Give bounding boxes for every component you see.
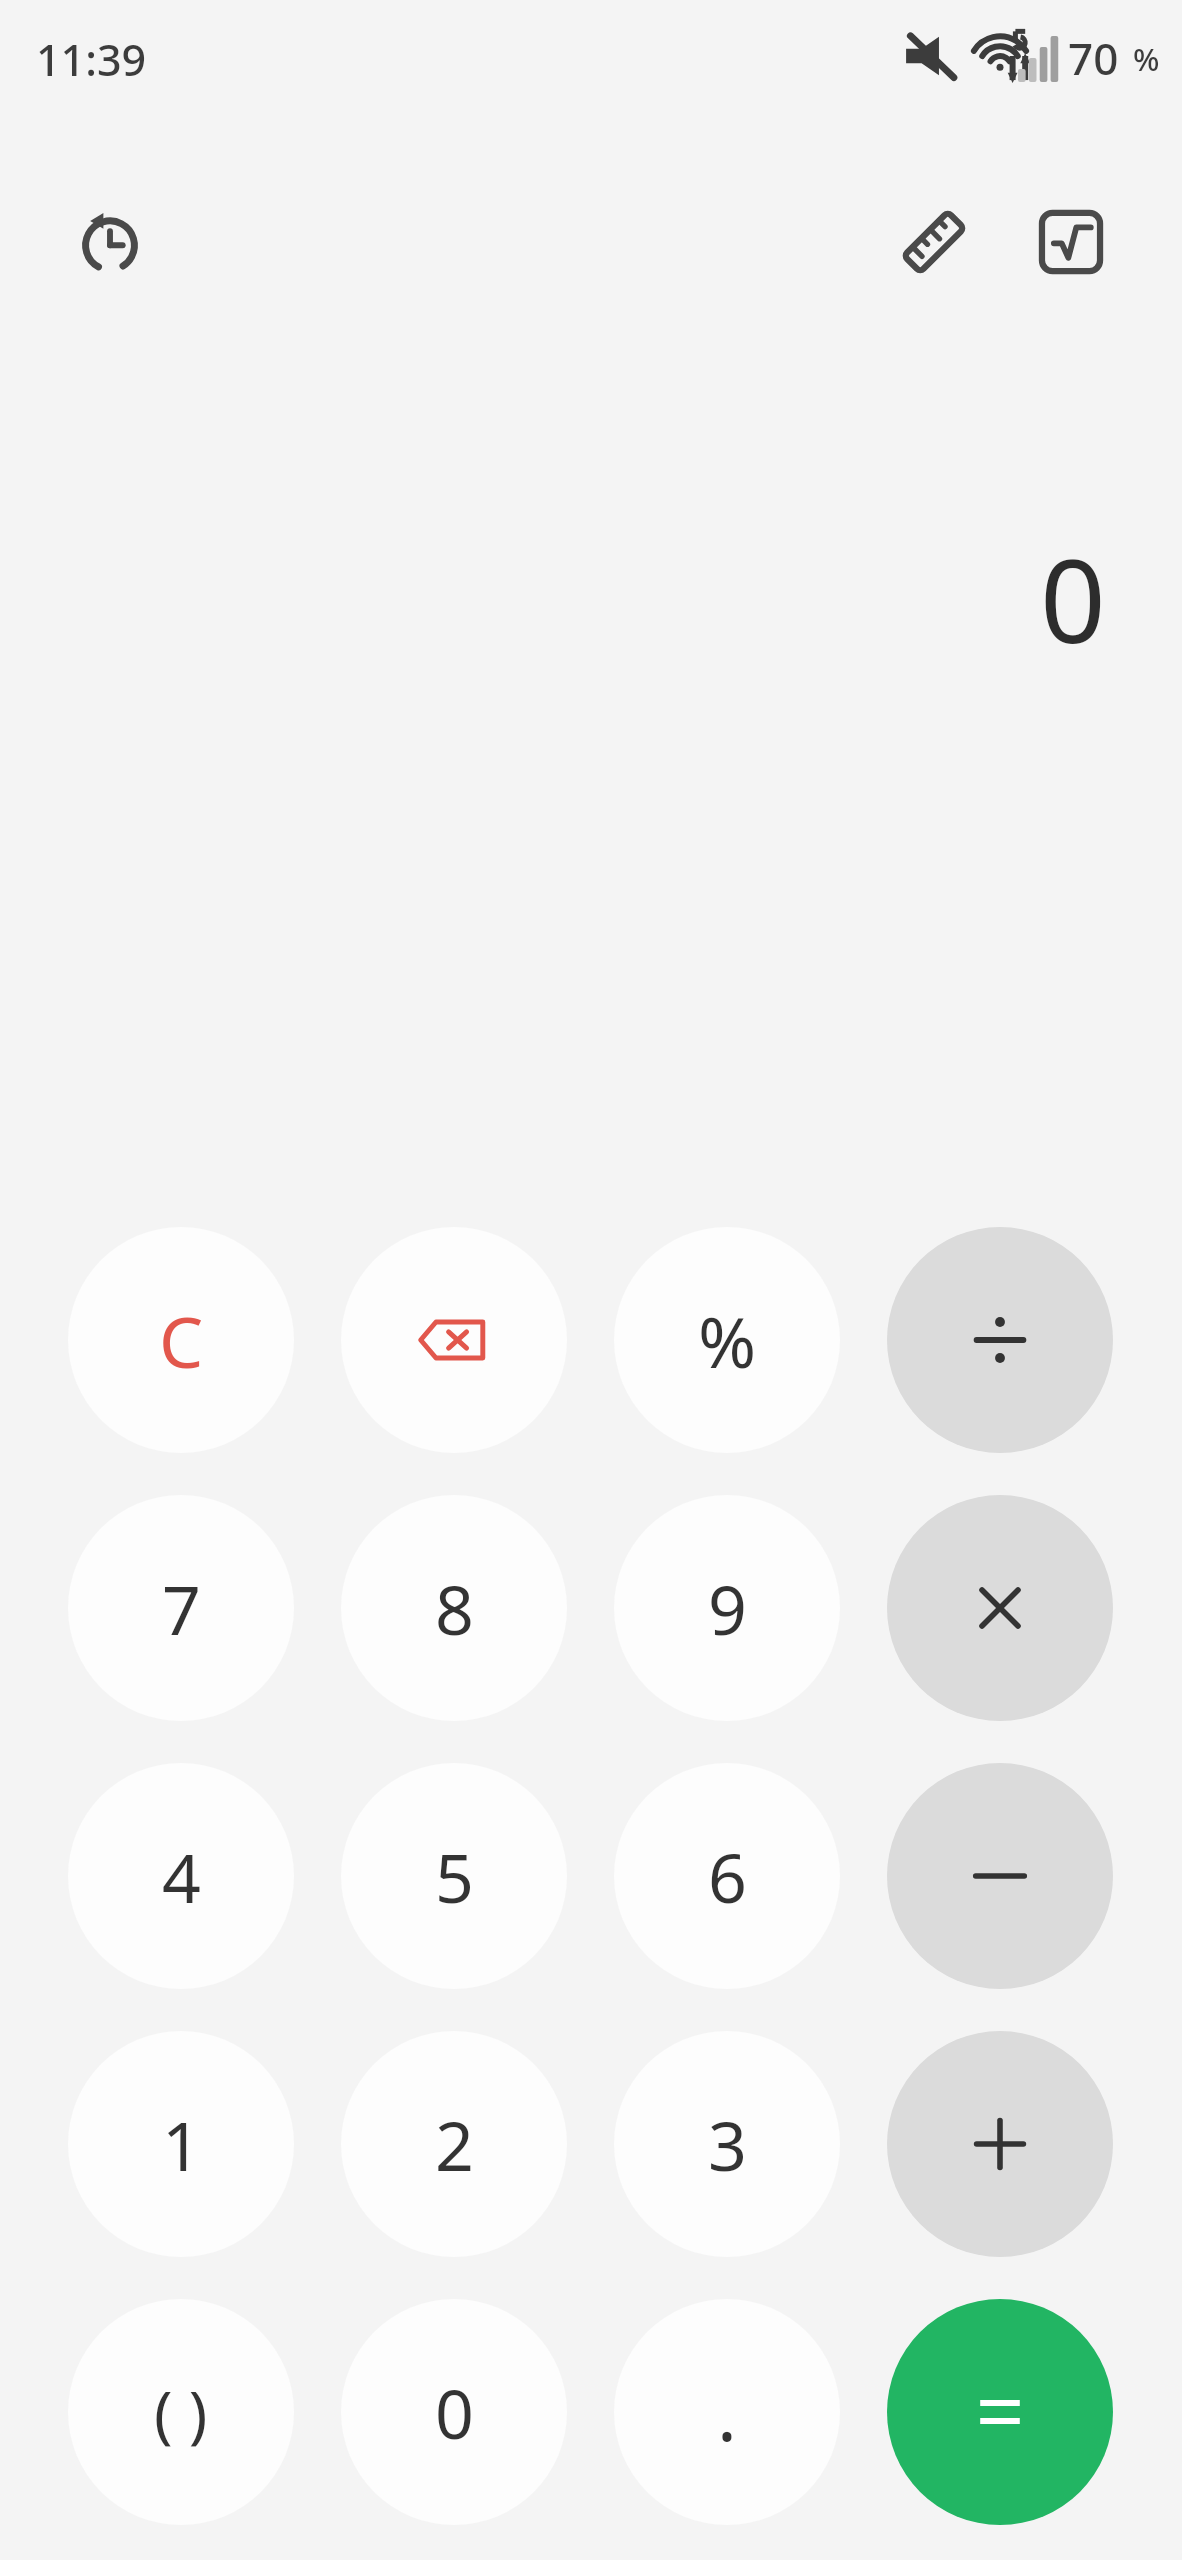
button[interactable]: Backspace <box>341 1227 567 1453</box>
staticText: 4 <box>162 1830 201 1923</box>
staticText: 2 <box>435 2098 474 2191</box>
button[interactable]: 7 <box>68 1495 294 1721</box>
button[interactable]: . <box>614 2299 840 2525</box>
button[interactable]: 5 <box>341 1763 567 1989</box>
button[interactable]: 4 <box>68 1763 294 1989</box>
staticText: % <box>1133 38 1160 80</box>
staticText: 3 <box>708 2098 747 2191</box>
button[interactable]: 8 <box>341 1495 567 1721</box>
staticText: . <box>717 2362 737 2463</box>
button[interactable]: ( ) <box>68 2299 294 2525</box>
button[interactable]: Plus <box>887 2031 1113 2257</box>
button[interactable]: Unit converter <box>868 176 1000 308</box>
button[interactable]: Equals <box>887 2299 1113 2525</box>
button[interactable]: 1 <box>68 2031 294 2257</box>
button[interactable]: Minus <box>887 1763 1113 1989</box>
staticText: % <box>698 1293 757 1388</box>
staticText: 1 <box>162 2098 201 2191</box>
staticText: 70 <box>1068 28 1119 88</box>
staticText: 7 <box>162 1562 201 1655</box>
button[interactable]: % <box>614 1227 840 1453</box>
staticText: 8 <box>435 1562 474 1655</box>
button[interactable]: 2 <box>341 2031 567 2257</box>
staticText: 6 <box>708 1830 747 1923</box>
staticText: 5 <box>435 1830 474 1923</box>
staticText: 0 <box>1040 520 1106 677</box>
staticText: 0 <box>435 2366 474 2459</box>
button[interactable]: C <box>68 1227 294 1453</box>
button[interactable]: 6 <box>614 1763 840 1989</box>
button[interactable]: Scientific calculator <box>1005 176 1137 308</box>
staticText: ( ) <box>154 2370 208 2454</box>
staticText: 9 <box>708 1562 747 1655</box>
button[interactable]: History <box>44 176 176 308</box>
button[interactable]: 9 <box>614 1495 840 1721</box>
staticText: C <box>159 1293 204 1388</box>
staticText: 11:39 <box>36 30 147 89</box>
button[interactable]: Multiply <box>887 1495 1113 1721</box>
button[interactable]: Divide <box>887 1227 1113 1453</box>
button[interactable]: 0 <box>341 2299 567 2525</box>
button[interactable]: 3 <box>614 2031 840 2257</box>
